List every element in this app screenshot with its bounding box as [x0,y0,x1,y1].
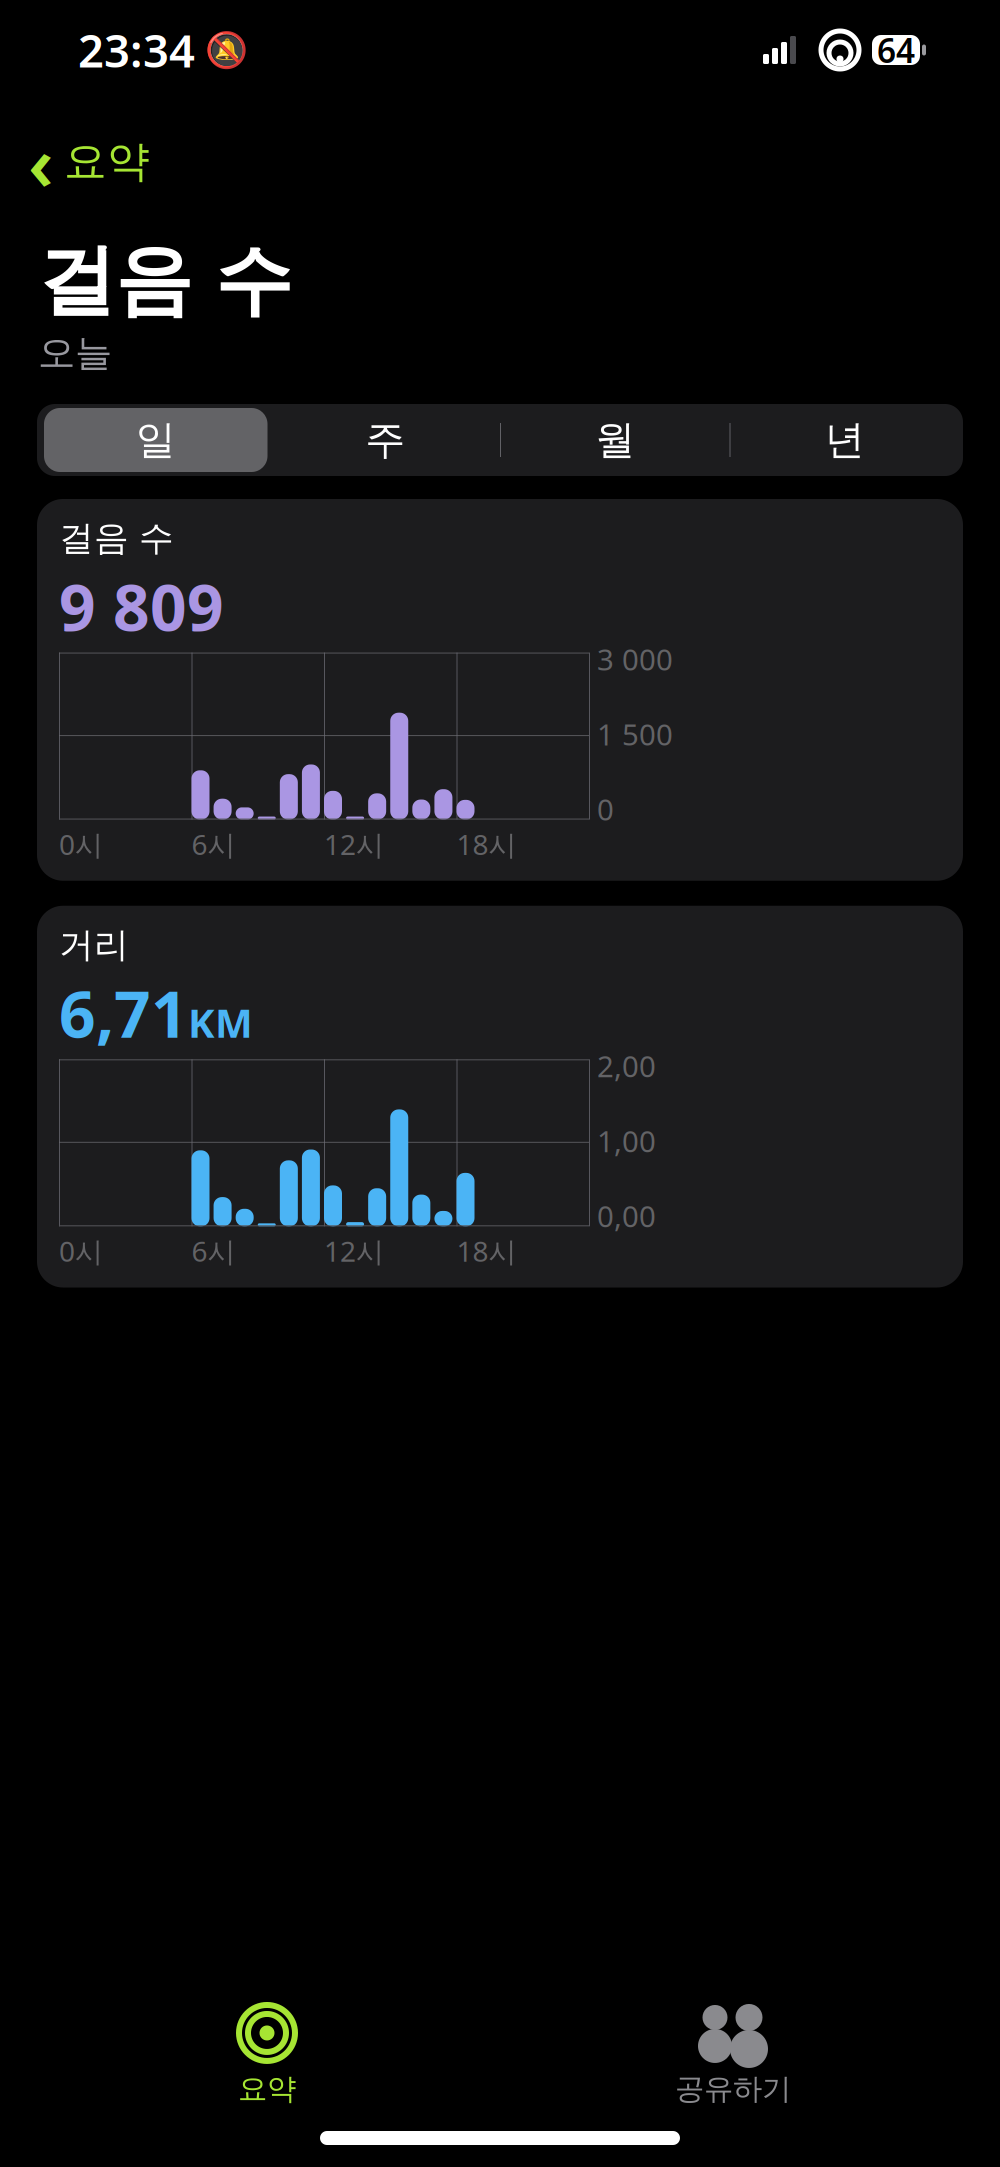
staticText: 0,00 [597,1196,656,1235]
button[interactable]: 걸음 수 [37,499,963,881]
staticText: 요약 [64,135,150,188]
staticText: 23:34 [78,20,195,80]
button[interactable]: 년 [729,404,959,476]
button[interactable]: 요약 [34,1997,500,2113]
staticText: 일 [136,415,176,464]
staticText: 요약 [238,2071,296,2107]
button[interactable]: 공유하기 [500,1997,966,2113]
staticText: 주 [365,415,405,464]
staticText: 공유하기 [675,2071,791,2107]
staticText: 64 [877,28,915,72]
staticText: 6시 [191,826,235,863]
staticText: 3 000 [597,640,673,679]
staticText: 1,00 [597,1121,656,1160]
staticText: KM [188,996,253,1049]
button[interactable]: 월 [500,404,729,476]
staticText: 6시 [191,1232,235,1269]
staticText: 18시 [456,1232,516,1269]
button[interactable]: 주 [270,404,500,476]
staticText: 0시 [59,826,103,863]
staticText: ‹ [28,112,54,211]
button[interactable]: ‹ [0,108,164,215]
staticText: 2,00 [597,1046,656,1085]
staticText: 오늘 [38,330,112,376]
staticText: 12시 [324,1232,384,1269]
staticText: 0 [597,790,614,829]
staticText: 12시 [324,826,384,863]
staticText: 년 [825,415,865,464]
staticText: 거리 [59,924,129,966]
staticText: 🔕 [205,30,248,70]
staticText: 0시 [59,1232,103,1269]
staticText: 6,71 [59,970,188,1055]
staticText: 18시 [456,826,516,863]
staticText: 1 500 [597,715,673,754]
button[interactable]: 거리 [37,906,963,1287]
staticText: 9 809 [59,564,224,649]
staticText: 월 [595,415,635,464]
staticText: 걸음 수 [38,233,292,328]
button[interactable]: 일 [41,404,270,476]
staticText: 걸음 수 [59,517,174,560]
